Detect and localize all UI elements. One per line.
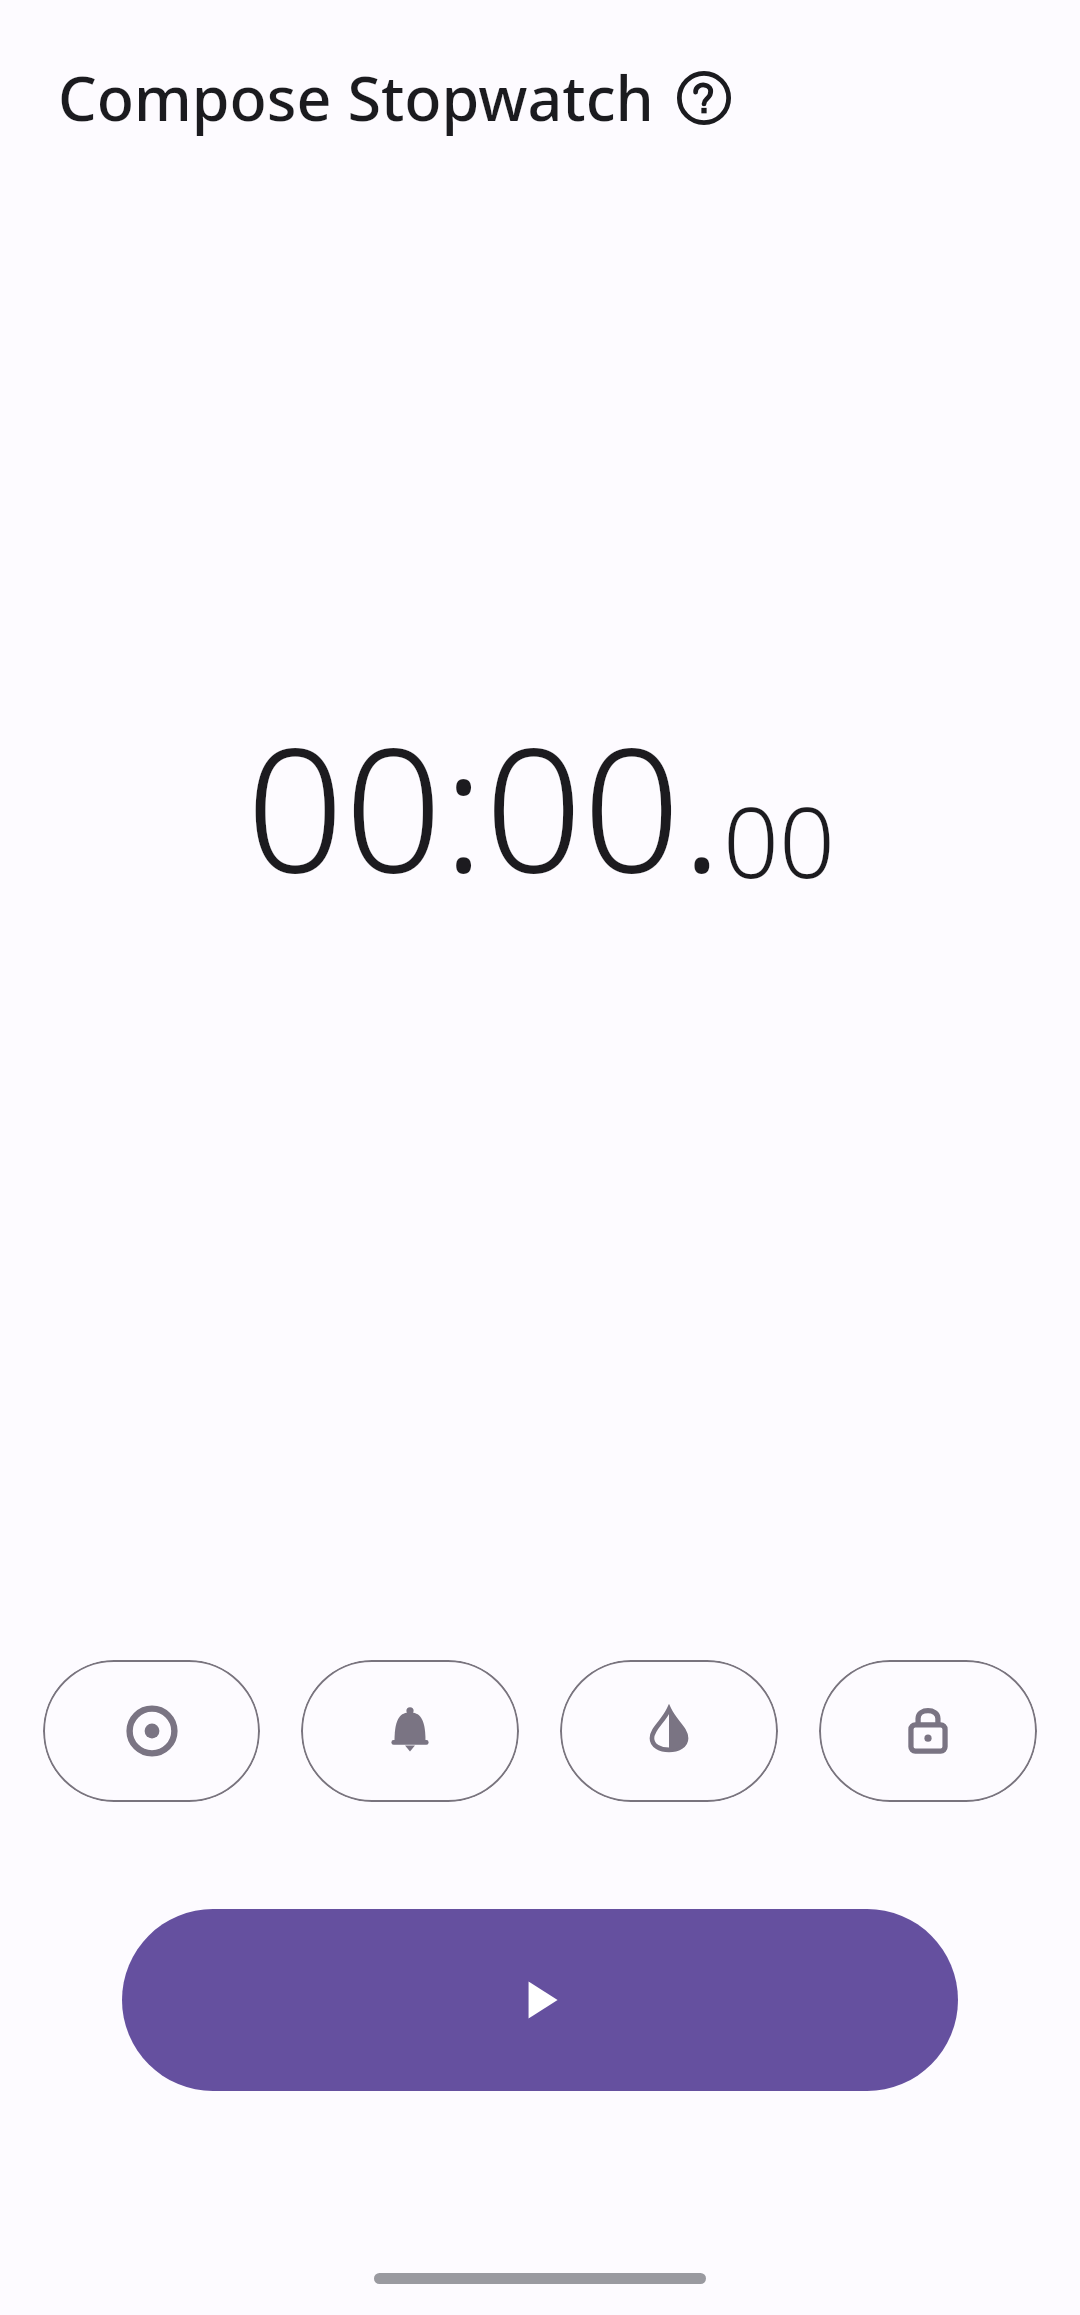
staticText: 00:00. — [246, 688, 723, 922]
button[interactable]: Lap — [43, 1660, 260, 1802]
button[interactable]: Theme — [560, 1660, 778, 1802]
button[interactable]: Lock — [819, 1660, 1037, 1802]
staticText: 00 — [723, 773, 835, 906]
button[interactable]: Alarm — [301, 1660, 519, 1802]
staticText: Compose Stopwatch — [58, 56, 654, 139]
button[interactable]: Start — [122, 1909, 958, 2091]
button[interactable]: Help — [672, 66, 736, 130]
